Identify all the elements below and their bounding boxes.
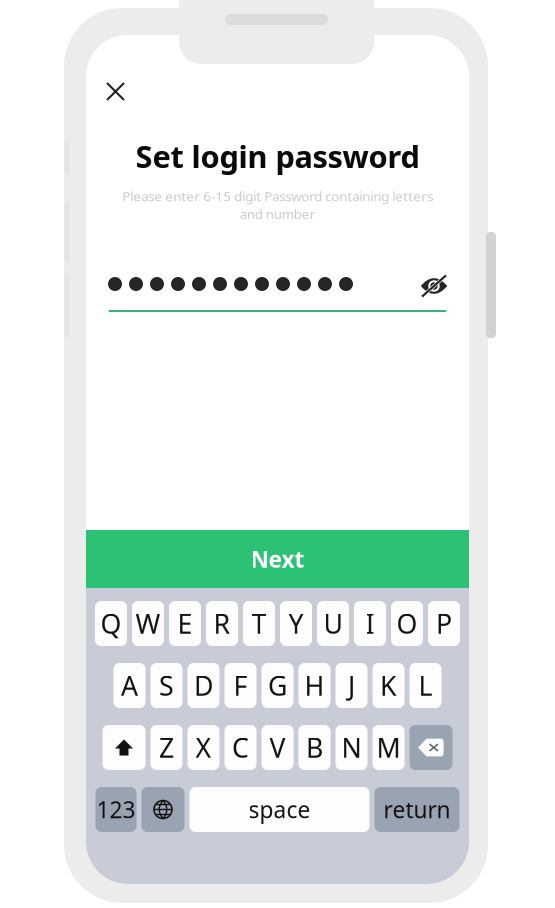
staticText: E [177,606,192,641]
button[interactable]: Show password [415,269,453,303]
staticText: Y [288,606,303,641]
button[interactable]: Q [95,601,127,646]
button[interactable]: S [150,663,182,708]
button[interactable]: X [187,725,219,770]
button[interactable]: Shift [102,725,145,770]
staticText: B [306,730,323,765]
button[interactable]: Y [280,601,312,646]
button[interactable]: B [298,725,330,770]
staticText: K [380,668,397,703]
staticText: G [268,668,287,703]
staticText: S [159,668,174,703]
button[interactable]: W [132,601,164,646]
button[interactable]: space [189,787,369,832]
button[interactable]: R [206,601,238,646]
button[interactable]: A [113,663,145,708]
button[interactable]: O [391,601,423,646]
staticText: I [365,606,374,641]
button[interactable]: U [317,601,349,646]
button[interactable]: H [298,663,330,708]
button[interactable]: Switch keyboard [141,787,184,832]
staticText: L [418,668,432,703]
button[interactable]: E [169,601,201,646]
button[interactable]: P [428,601,460,646]
staticText: N [341,730,361,765]
button[interactable]: N [335,725,367,770]
button[interactable]: D [187,663,219,708]
staticText: C [232,730,249,765]
staticText: X [195,730,211,765]
button[interactable]: return [374,787,459,832]
staticText: O [396,606,417,641]
button[interactable]: Next [86,530,469,588]
button[interactable]: L [409,663,441,708]
staticText: H [304,668,324,703]
staticText: Set login password [135,136,419,176]
button[interactable]: C [224,725,256,770]
staticText: M [376,730,400,765]
staticText: F [233,668,247,703]
staticText: D [194,668,213,703]
staticText: J [348,668,355,703]
button[interactable]: Close [99,75,132,108]
staticText: T [251,606,266,641]
staticText: Please enter 6-15 digit Password contain… [122,187,433,223]
staticText: Next [250,544,304,574]
button[interactable]: V [261,725,293,770]
button[interactable]: K [372,663,404,708]
staticText: W [135,606,160,641]
button[interactable]: T [243,601,275,646]
staticText: V [269,730,285,765]
button[interactable]: G [261,663,293,708]
staticText: Z [159,730,174,765]
staticText: P [436,606,452,641]
button[interactable]: I [354,601,386,646]
button[interactable]: Delete [409,725,452,770]
button[interactable]: 123 [95,787,136,832]
staticText: return [383,794,450,824]
button[interactable]: Z [150,725,182,770]
staticText: A [121,668,138,703]
staticText: space [248,794,310,824]
staticText: Q [100,606,121,641]
staticText: R [213,606,230,641]
button[interactable]: F [224,663,256,708]
staticText: 123 [96,794,135,824]
button[interactable]: J [335,663,367,708]
staticText: U [323,606,342,641]
button[interactable]: M [372,725,404,770]
